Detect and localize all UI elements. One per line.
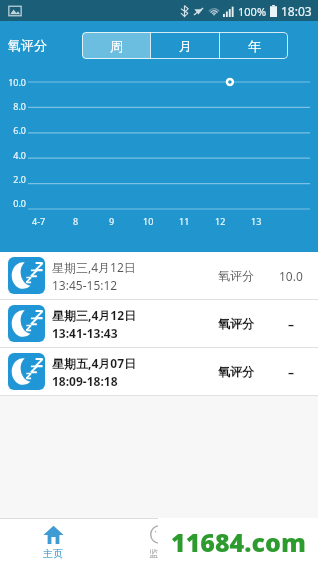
staticText: 10.0 xyxy=(0,76,26,88)
staticText: 100% xyxy=(238,4,267,19)
staticText: 13 xyxy=(251,215,262,227)
button[interactable]: 主页 xyxy=(0,518,106,566)
staticText: 6.0 xyxy=(0,124,26,136)
staticText: 13:41-13:43 xyxy=(52,325,118,341)
button[interactable]: Sleep record xyxy=(0,252,318,299)
button[interactable]: 周 xyxy=(82,32,150,59)
staticText: 18:03 xyxy=(281,3,312,19)
staticText: 星期三,4月12日 xyxy=(52,307,137,323)
staticText: 氧评分 xyxy=(218,268,254,283)
staticText: 主页 xyxy=(43,547,63,560)
other: Sleep record xyxy=(8,353,45,390)
staticText: 监控 xyxy=(149,547,169,560)
staticText: 2.0 xyxy=(0,173,26,185)
button[interactable]: Sleep record xyxy=(0,300,318,347)
staticText: 0.0 xyxy=(0,197,26,209)
other: Sleep record xyxy=(8,305,45,342)
button[interactable]: 月 xyxy=(151,32,219,59)
staticText: 11684.com xyxy=(171,525,306,559)
button[interactable]: 年 xyxy=(220,32,288,59)
staticText: 13:45-15:12 xyxy=(52,277,118,293)
button[interactable]: 监控 xyxy=(106,518,212,566)
staticText: 星期三,4月12日 xyxy=(52,259,136,275)
staticText: 月 xyxy=(179,38,192,54)
staticText: 周 xyxy=(110,38,123,54)
staticText: 12 xyxy=(215,215,226,227)
staticText: 8 xyxy=(73,215,79,227)
staticText: 8.0 xyxy=(0,100,26,112)
staticText: 氧评分 xyxy=(8,37,47,53)
staticText: – xyxy=(288,316,295,332)
staticText: 18:09-18:18 xyxy=(52,373,118,389)
button[interactable]: Sleep record xyxy=(0,348,318,395)
staticText: 10.0 xyxy=(279,268,303,284)
staticText: 4-7 xyxy=(32,215,46,227)
staticText: 氧评分 xyxy=(218,316,254,331)
staticText: 4.0 xyxy=(0,149,26,161)
staticText: 11 xyxy=(179,215,190,227)
staticText: 年 xyxy=(248,38,261,54)
other: Sleep record xyxy=(8,257,45,294)
staticText: 氧评分 xyxy=(218,364,254,379)
staticText: 星期五,4月07日 xyxy=(52,355,137,371)
staticText: 9 xyxy=(109,215,115,227)
staticText: – xyxy=(288,364,295,380)
staticText: 10 xyxy=(143,215,154,227)
